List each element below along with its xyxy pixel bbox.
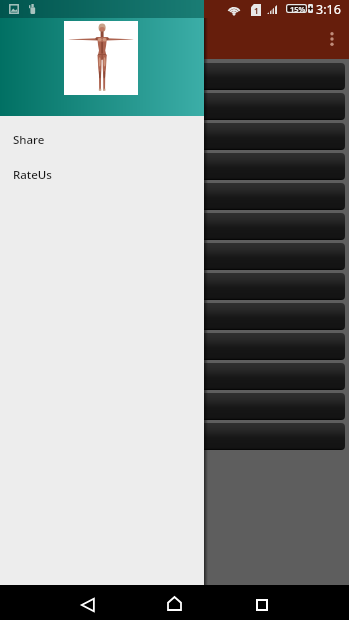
button[interactable] [4,393,345,420]
staticText: RateUs [13,167,52,183]
button[interactable] [4,243,345,270]
button[interactable] [4,183,345,210]
button[interactable] [4,423,345,450]
button[interactable] [4,363,345,390]
button[interactable]: Home [162,585,187,620]
button[interactable] [4,333,345,360]
button[interactable] [4,153,345,180]
button[interactable] [4,213,345,240]
button[interactable] [4,273,345,300]
button[interactable] [4,93,345,120]
button[interactable] [4,123,345,150]
button[interactable] [4,303,345,330]
button[interactable]: Back [75,585,100,620]
staticText: 1 [254,5,259,16]
staticText: 3:16 [316,1,341,18]
button[interactable]: RateUs [0,157,204,192]
button[interactable]: Share [0,122,204,157]
staticText: 15% [290,4,306,13]
button[interactable]: Recents [249,585,274,620]
button[interactable]: More options [319,26,345,52]
button[interactable] [4,63,345,90]
staticText: Share [13,132,45,148]
